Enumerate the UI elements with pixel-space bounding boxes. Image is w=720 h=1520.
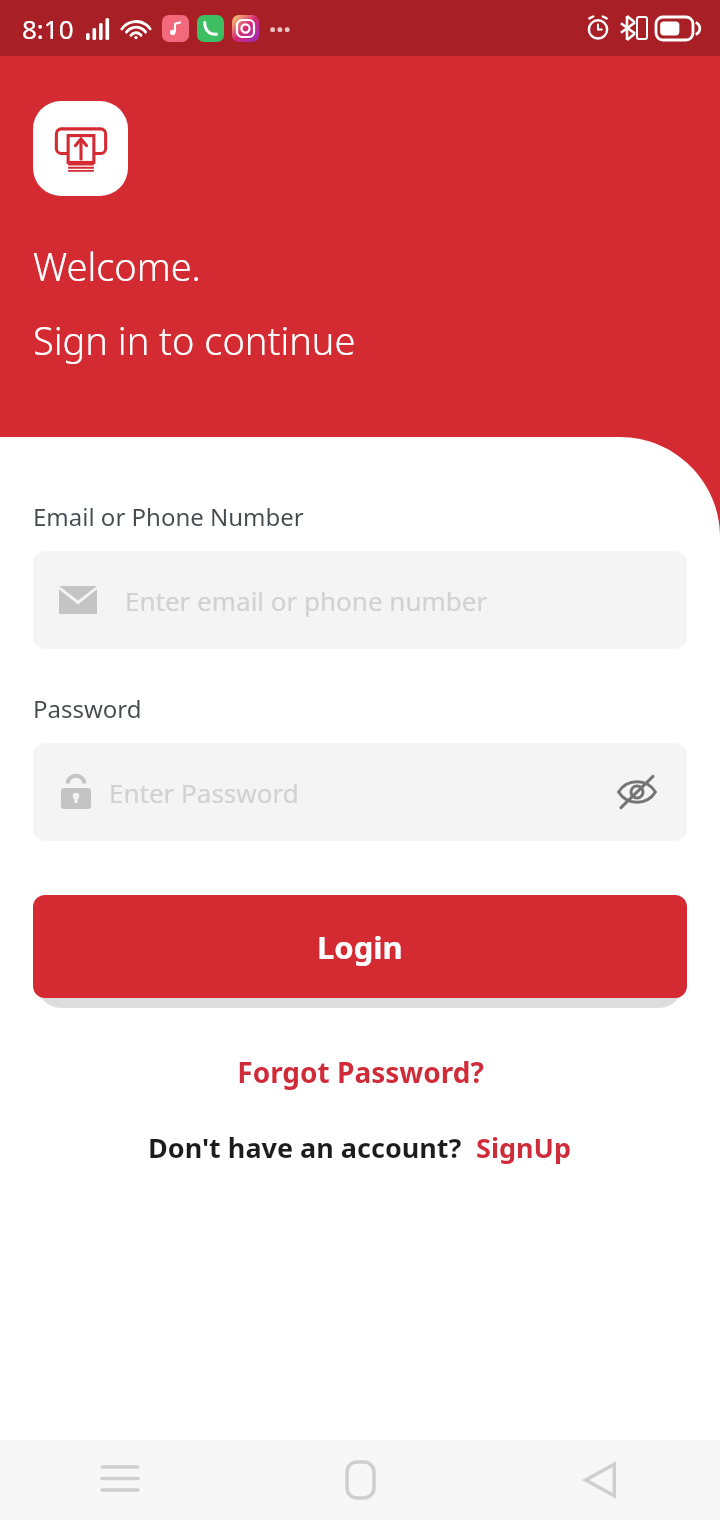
staticText: Email or Phone Number (33, 500, 304, 533)
staticText: Forgot Password? (237, 1053, 484, 1091)
button[interactable]: Home (240, 1440, 480, 1520)
button[interactable]: Forgot Password? (33, 1053, 687, 1091)
button[interactable]: Recent apps (0, 1440, 240, 1520)
button[interactable]: Login (33, 895, 687, 998)
staticText: Login (317, 926, 403, 968)
button[interactable]: SignUp (476, 1129, 572, 1166)
staticText: ··· (269, 11, 291, 46)
staticText: Enter email or phone number (125, 583, 488, 618)
staticText: 8:10 (22, 11, 74, 46)
staticText: Sign in to continue (33, 314, 356, 366)
staticText: Don't have an account? (148, 1129, 462, 1166)
button[interactable]: Show password (611, 766, 663, 818)
staticText: Welcome. (33, 240, 201, 292)
staticText: Password (33, 692, 142, 725)
button[interactable]: Enter Password (33, 743, 687, 841)
button[interactable]: Back (480, 1440, 720, 1520)
staticText: Enter Password (109, 775, 611, 810)
staticText: SignUp (476, 1129, 572, 1166)
button[interactable]: Enter email or phone number (33, 551, 687, 649)
